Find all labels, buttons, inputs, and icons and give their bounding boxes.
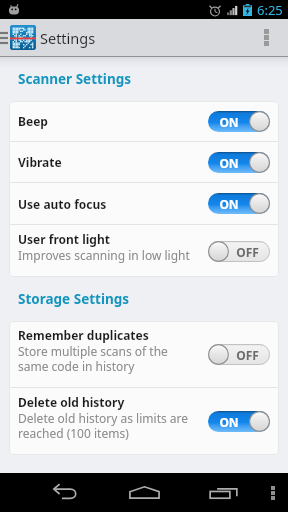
staticText: Remember duplicates xyxy=(18,327,149,343)
staticText: Delete old history xyxy=(18,394,125,410)
button[interactable]: Home xyxy=(119,473,169,512)
button[interactable]: Enabled xyxy=(208,193,270,214)
button[interactable]: User front light xyxy=(9,225,279,277)
staticText: Improves scanning in low light xyxy=(18,247,190,263)
staticText: Settings xyxy=(40,28,96,48)
staticText: ON xyxy=(219,114,239,130)
staticText: Scanner Settings xyxy=(18,70,131,88)
staticText: OFF xyxy=(236,347,259,363)
button[interactable]: Settings xyxy=(0,19,96,56)
staticText: ON xyxy=(219,414,239,430)
staticText: Store multiple scans of the same code in… xyxy=(18,343,168,374)
staticText: User front light xyxy=(18,231,110,247)
button[interactable]: Remember duplicates xyxy=(9,321,279,387)
button[interactable]: Enabled xyxy=(208,111,270,132)
staticText: Vibrate xyxy=(18,154,62,170)
staticText: Storage Settings xyxy=(18,290,130,308)
button[interactable]: Back xyxy=(39,473,89,512)
staticText: ON xyxy=(219,196,239,212)
button[interactable]: More options xyxy=(244,19,288,56)
button[interactable]: Disabled xyxy=(208,241,270,262)
button[interactable]: Delete old history xyxy=(9,388,279,455)
button[interactable]: Recent apps xyxy=(198,473,248,512)
button[interactable]: Enabled xyxy=(208,152,270,173)
button[interactable]: Beep xyxy=(9,101,279,141)
staticText: OFF xyxy=(236,244,259,260)
staticText: Beep xyxy=(18,113,48,129)
staticText: Delete old history as limits are reached… xyxy=(18,410,189,441)
staticText: Use auto focus xyxy=(18,196,107,212)
button[interactable]: Use auto focus xyxy=(9,183,279,224)
button[interactable]: More options xyxy=(257,473,288,512)
button[interactable]: Enabled xyxy=(208,411,270,432)
button[interactable]: Vibrate xyxy=(9,142,279,182)
button[interactable]: Disabled xyxy=(208,344,270,365)
staticText: 6:25 xyxy=(257,1,283,19)
staticText: ON xyxy=(219,155,239,171)
